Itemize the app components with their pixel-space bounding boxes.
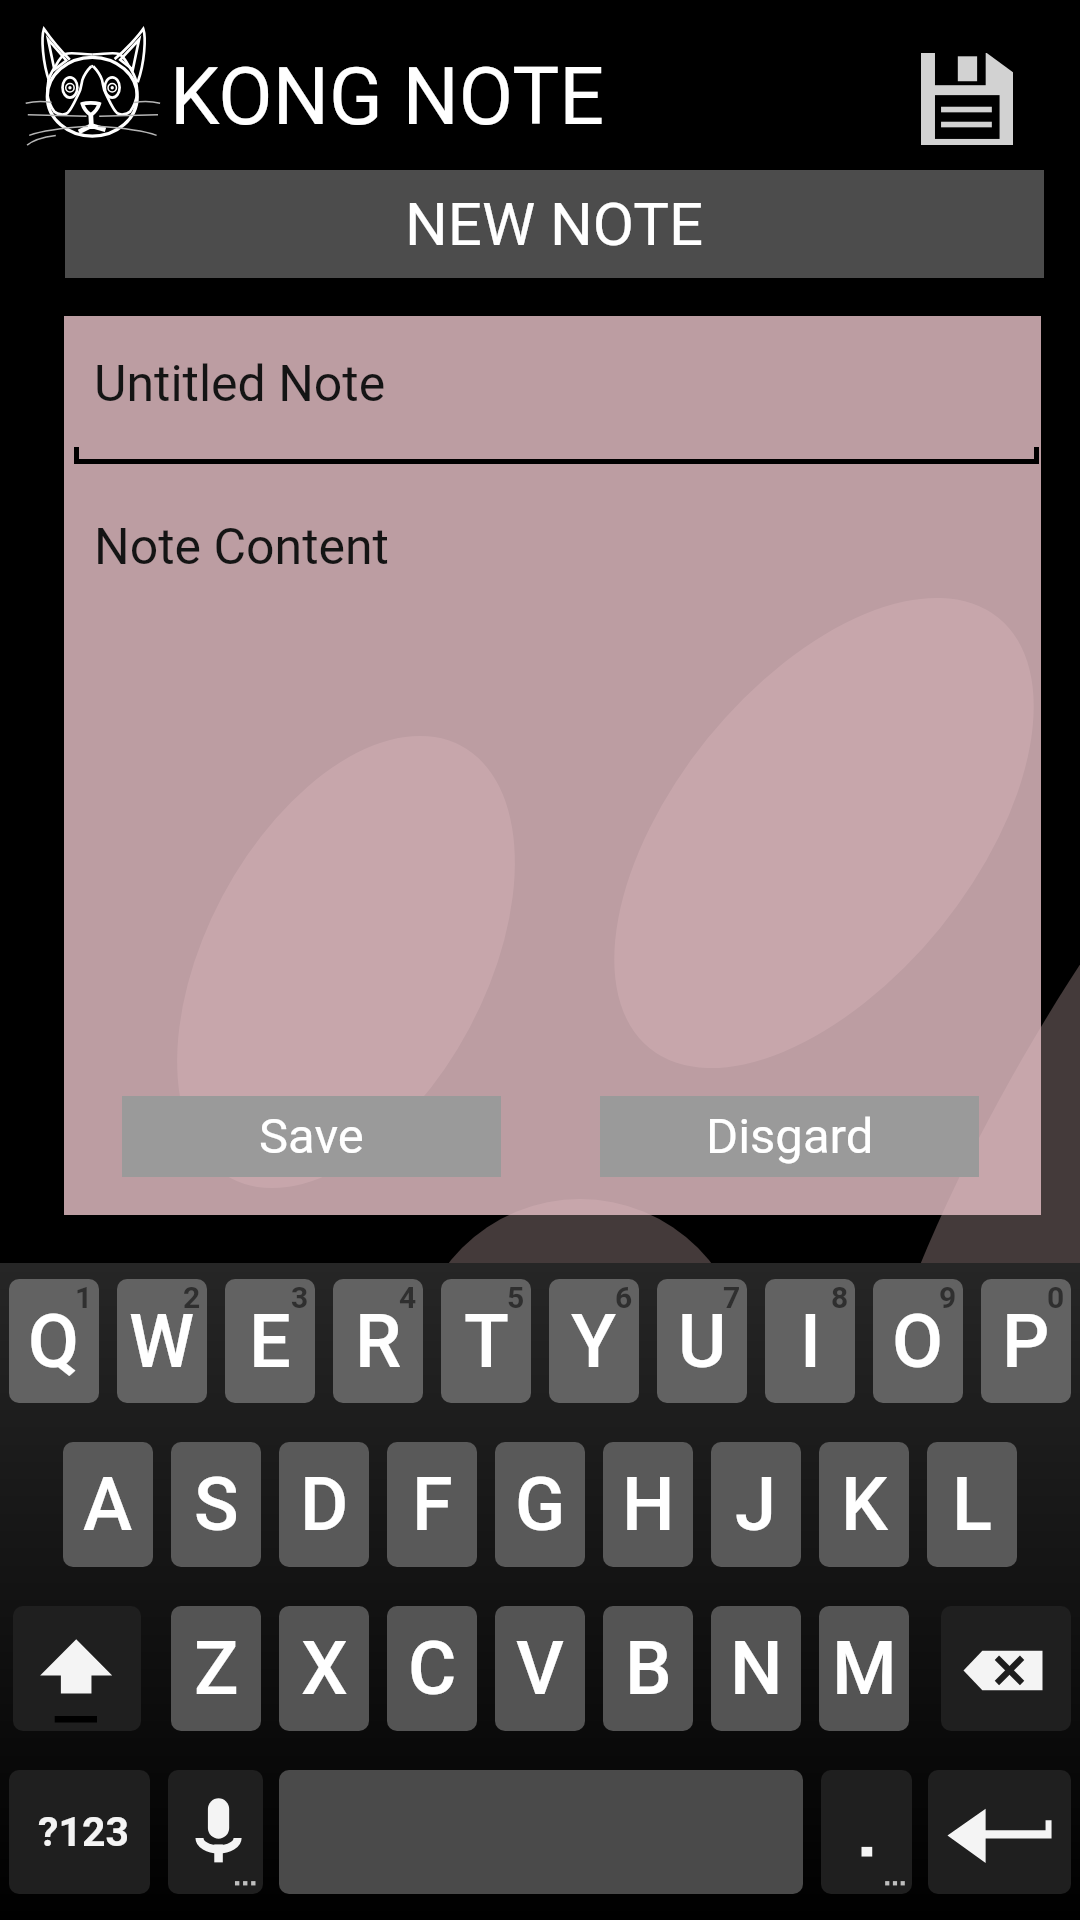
- button[interactable]: Enter: [928, 1770, 1071, 1894]
- button[interactable]: 1: [9, 1279, 99, 1403]
- staticText: J: [735, 1461, 777, 1548]
- button[interactable]: C: [387, 1606, 477, 1731]
- staticText: Y: [571, 1298, 617, 1385]
- staticText: Note Content: [94, 518, 389, 577]
- staticText: N: [730, 1625, 783, 1712]
- staticText: 4: [399, 1280, 417, 1315]
- staticText: E: [249, 1298, 291, 1385]
- button[interactable]: B: [603, 1606, 693, 1731]
- button[interactable]: Save note: [921, 53, 1013, 145]
- button[interactable]: J: [711, 1442, 801, 1567]
- button[interactable]: Period: [821, 1770, 912, 1894]
- button[interactable]: X: [279, 1606, 369, 1731]
- staticText: U: [678, 1298, 727, 1385]
- button[interactable]: G: [495, 1442, 585, 1567]
- staticText: ?123: [38, 1808, 129, 1856]
- button[interactable]: H: [603, 1442, 693, 1567]
- button[interactable]: 7: [657, 1279, 747, 1403]
- button[interactable]: Save: [122, 1096, 501, 1177]
- staticText: T: [464, 1298, 509, 1385]
- staticText: C: [408, 1625, 457, 1712]
- staticText: L: [952, 1461, 993, 1548]
- staticText: 5: [507, 1280, 525, 1315]
- staticText: G: [515, 1461, 566, 1548]
- button[interactable]: NEW NOTE: [65, 170, 1044, 278]
- staticText: 2: [183, 1280, 201, 1315]
- button[interactable]: 5: [441, 1279, 531, 1403]
- button[interactable]: A: [63, 1442, 153, 1567]
- staticText: 0: [1047, 1280, 1065, 1315]
- staticText: 9: [939, 1280, 957, 1315]
- other: Kong Note logo: [25, 15, 165, 155]
- staticText: P: [1002, 1298, 1050, 1385]
- staticText: D: [300, 1461, 349, 1548]
- staticText: I: [800, 1298, 821, 1385]
- button[interactable]: 9: [873, 1279, 963, 1403]
- staticText: R: [355, 1298, 402, 1385]
- button[interactable]: L: [927, 1442, 1017, 1567]
- staticText: 1: [75, 1280, 93, 1315]
- staticText: Save: [259, 1108, 364, 1165]
- button[interactable]: V: [495, 1606, 585, 1731]
- button[interactable]: K: [819, 1442, 909, 1567]
- staticText: K: [841, 1461, 888, 1548]
- staticText: 3: [291, 1280, 309, 1315]
- button[interactable]: 8: [765, 1279, 855, 1403]
- button[interactable]: 6: [549, 1279, 639, 1403]
- staticText: M: [832, 1625, 897, 1712]
- staticText: 6: [615, 1280, 633, 1315]
- staticText: A: [83, 1461, 133, 1548]
- button[interactable]: 0: [981, 1279, 1071, 1403]
- button[interactable]: 2: [117, 1279, 207, 1403]
- staticText: O: [892, 1298, 944, 1385]
- staticText: 7: [723, 1280, 741, 1315]
- staticText: Z: [194, 1625, 239, 1712]
- staticText: NEW NOTE: [405, 189, 704, 259]
- staticText: V: [516, 1625, 564, 1712]
- button[interactable]: Disgard: [600, 1096, 979, 1177]
- staticText: Q: [28, 1298, 80, 1385]
- button[interactable]: 4: [333, 1279, 423, 1403]
- staticText: H: [622, 1461, 675, 1548]
- staticText: Disgard: [706, 1108, 874, 1165]
- button[interactable]: Voice input: [168, 1770, 263, 1894]
- staticText: Untitled Note: [94, 355, 386, 414]
- staticText: F: [412, 1461, 453, 1548]
- button[interactable]: Backspace: [941, 1606, 1071, 1731]
- button[interactable]: Shift: [13, 1606, 141, 1731]
- staticText: KONG NOTE: [170, 51, 605, 144]
- button[interactable]: F: [387, 1442, 477, 1567]
- button[interactable]: S: [171, 1442, 261, 1567]
- button[interactable]: N: [711, 1606, 801, 1731]
- staticText: 8: [831, 1280, 849, 1315]
- staticText: S: [194, 1461, 239, 1548]
- staticText: W: [129, 1298, 195, 1385]
- button[interactable]: Z: [171, 1606, 261, 1731]
- button[interactable]: M: [819, 1606, 909, 1731]
- staticText: X: [301, 1625, 348, 1712]
- staticText: B: [625, 1625, 672, 1712]
- button[interactable]: D: [279, 1442, 369, 1567]
- button[interactable]: ?123: [9, 1770, 150, 1894]
- button[interactable]: 3: [225, 1279, 315, 1403]
